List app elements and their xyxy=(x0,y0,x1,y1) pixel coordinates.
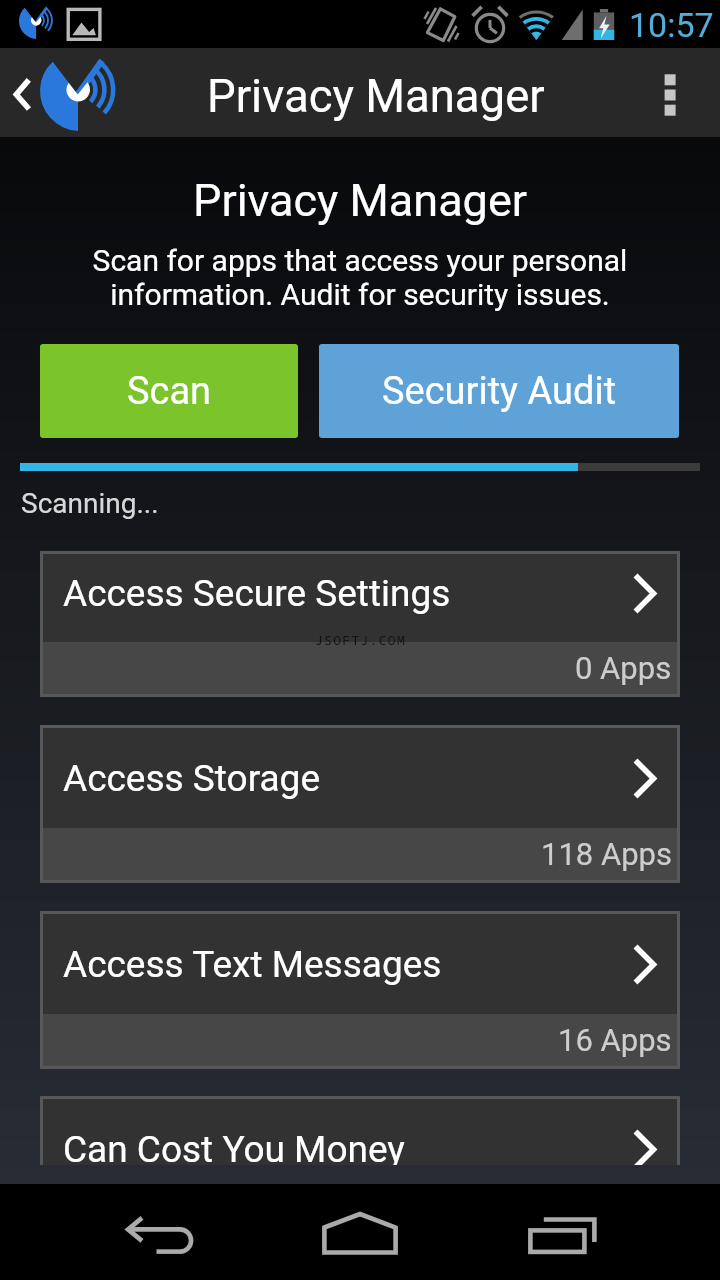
button[interactable]: Scan xyxy=(40,344,298,438)
staticText: 16 Apps xyxy=(558,1022,672,1058)
staticText: Privacy Manager xyxy=(207,70,545,123)
staticText: Scanning... xyxy=(21,487,159,520)
button[interactable]: More options xyxy=(620,48,720,137)
staticText: JSOFTJ.COM xyxy=(315,631,407,649)
button[interactable]: Security Audit xyxy=(319,344,679,438)
staticText: Access Text Messages xyxy=(63,943,442,986)
button[interactable]: Back xyxy=(0,1184,240,1280)
staticText: Scan for apps that access your personal … xyxy=(78,243,642,312)
button[interactable]: Navigate up xyxy=(0,48,128,137)
staticText: Access Storage xyxy=(63,757,321,800)
button[interactable]: Can Cost You Money xyxy=(43,1099,677,1165)
button[interactable]: Access Secure Settings xyxy=(43,554,677,694)
button[interactable]: Access Text Messages xyxy=(43,914,677,1066)
staticText: Scan xyxy=(127,369,212,414)
staticText: Access Secure Settings xyxy=(63,572,451,615)
staticText: 0 Apps xyxy=(575,650,672,686)
staticText: 118 Apps xyxy=(541,836,672,872)
button[interactable]: Recent apps xyxy=(480,1184,720,1280)
button[interactable]: Access Storage xyxy=(43,728,677,880)
staticText: Can Cost You Money xyxy=(63,1128,405,1165)
staticText: Privacy Manager xyxy=(0,174,720,227)
staticText: 10:57 xyxy=(629,5,714,45)
button[interactable]: Home xyxy=(240,1184,480,1280)
staticText: Security Audit xyxy=(382,369,617,414)
